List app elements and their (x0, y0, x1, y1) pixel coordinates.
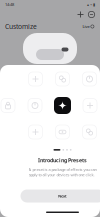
button[interactable]: Effect (54, 71, 70, 87)
button[interactable]: Effect (81, 124, 97, 140)
button[interactable]: Live (81, 23, 95, 30)
button[interactable]: Remove device (86, 9, 97, 20)
button[interactable]: Add device (75, 9, 86, 20)
button[interactable]: Presets (54, 97, 71, 114)
staticText: Next (58, 193, 67, 199)
staticText: Customize (5, 22, 37, 31)
button[interactable]: Effect (27, 97, 43, 113)
staticText: A preset is a package of effects you can… (28, 167, 96, 177)
button[interactable]: Effect (0, 97, 16, 113)
button[interactable]: Effect (82, 97, 98, 113)
staticText: ▴ ⌁ ▮ (87, 2, 95, 7)
button[interactable]: Effect (27, 124, 43, 140)
staticText: Introducing Presets (38, 157, 87, 164)
staticText: Live (82, 24, 89, 29)
button[interactable]: Effect (54, 124, 70, 140)
staticText: 14:48 (5, 2, 14, 7)
button[interactable]: Effect (81, 71, 97, 87)
button[interactable]: Effect (27, 71, 43, 87)
button[interactable]: Next (20, 189, 100, 202)
